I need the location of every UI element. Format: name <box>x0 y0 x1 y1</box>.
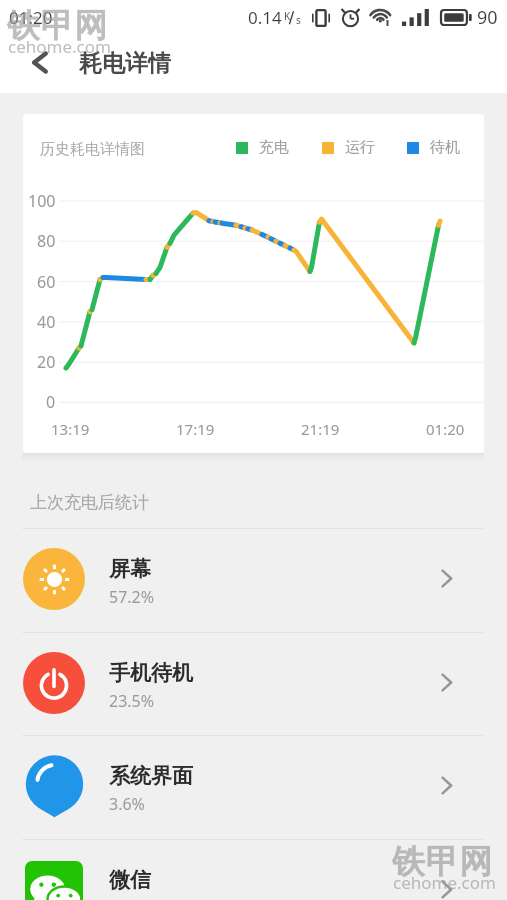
staticText: 17:19 <box>176 419 215 439</box>
staticText: 手机待机 <box>109 660 193 686</box>
button[interactable]: 微信 <box>0 838 507 900</box>
staticText: 铁甲网 <box>7 5 108 47</box>
staticText: s <box>296 13 301 27</box>
staticText: 57.2% <box>109 586 155 608</box>
staticText: 40 <box>37 311 56 333</box>
staticText: 3.6% <box>109 793 145 815</box>
staticText: 上次充电后统计 <box>30 492 149 513</box>
staticText: 90 <box>477 5 498 30</box>
button[interactable]: 手机待机 <box>0 631 507 734</box>
staticText: 01:20 <box>426 419 465 439</box>
staticText: 历史耗电详情图 <box>40 140 145 159</box>
staticText: 耗电详情 <box>79 49 171 78</box>
staticText: 80 <box>37 230 56 252</box>
staticText: 运行 <box>345 138 375 157</box>
staticText: 待机 <box>430 138 460 157</box>
staticText: 铁甲网 <box>392 841 493 883</box>
staticText: 屏幕 <box>109 556 151 582</box>
staticText: 0 <box>46 391 56 413</box>
staticText: 01:20 <box>9 6 53 29</box>
staticText: cehome.com <box>393 871 496 894</box>
staticText: 0.14 <box>248 6 282 29</box>
staticText: 系统界面 <box>109 763 193 789</box>
staticText: 60 <box>37 271 56 293</box>
staticText: cehome.com <box>8 35 111 58</box>
staticText: 21:19 <box>301 419 340 439</box>
staticText: 充电 <box>259 138 289 157</box>
staticText: 13:19 <box>51 419 90 439</box>
button[interactable]: 系统界面 <box>0 734 507 837</box>
button[interactable]: 屏幕 <box>0 527 507 630</box>
staticText: 微信 <box>109 867 151 893</box>
staticText: 100 <box>28 190 56 212</box>
staticText: 23.5% <box>109 690 155 712</box>
button[interactable]: Back <box>0 34 64 93</box>
staticText: K <box>284 9 291 23</box>
staticText: 20 <box>37 351 56 373</box>
